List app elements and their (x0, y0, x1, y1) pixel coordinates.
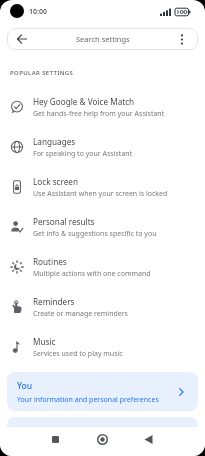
button[interactable]: Routines (0, 247, 205, 287)
staticText: Use Assistant when your screen is locked (33, 189, 168, 199)
staticText: For speaking to your Assistant (33, 149, 133, 159)
staticText: Lock screen (33, 176, 79, 187)
staticText: Your information and personal preference… (17, 395, 159, 405)
button[interactable]: Languages (0, 127, 205, 167)
staticText: Services used to play music (33, 349, 123, 359)
staticText: Get hands-free help from your Assistant (33, 109, 165, 119)
button[interactable] (7, 417, 198, 429)
staticText: You (17, 380, 33, 392)
staticText: Multiple actions with one command (33, 269, 151, 279)
staticText: Search settings (76, 34, 130, 44)
button[interactable]: Music (0, 327, 205, 367)
button[interactable]: You (7, 372, 198, 411)
button[interactable]: Hey Google & Voice Match (0, 87, 205, 127)
staticText: Get info & suggestions specific to you (33, 229, 157, 239)
staticText: Personal results (33, 216, 95, 227)
staticText: 10:00 (29, 7, 47, 17)
button[interactable] (92, 429, 112, 449)
staticText: Create or manage reminders (33, 309, 128, 319)
staticText: Hey Google & Voice Match (33, 96, 135, 107)
staticText: POPULAR SETTINGS (10, 69, 74, 77)
staticText: Reminders (33, 296, 75, 307)
staticText: Music (33, 336, 56, 347)
staticText: Routines (33, 256, 67, 267)
button[interactable] (45, 429, 65, 449)
button[interactable]: Search settings (7, 28, 198, 50)
button[interactable]: Reminders (0, 287, 205, 327)
button[interactable] (138, 429, 158, 449)
button[interactable]: Personal results (0, 207, 205, 247)
button[interactable]: Lock screen (0, 167, 205, 207)
staticText: Languages (33, 136, 76, 147)
